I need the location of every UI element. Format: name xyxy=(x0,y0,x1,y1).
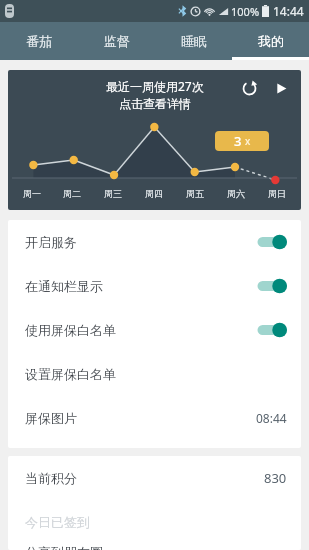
button[interactable]: 最近一周使用27次 xyxy=(8,70,301,210)
staticText: 周三 xyxy=(104,188,122,199)
staticText: 屏保图片 xyxy=(25,410,77,426)
staticText: 番茄 xyxy=(26,33,52,49)
staticText: 使用屏保白名单 xyxy=(25,322,116,338)
staticText: 开启服务 xyxy=(25,234,77,250)
staticText: 今日已签到 xyxy=(25,514,90,530)
button[interactable]: 在通知栏显示 xyxy=(8,264,301,308)
button[interactable]: 设置屏保白名单 xyxy=(8,352,301,396)
button[interactable]: 使用屏保白名单 xyxy=(8,308,301,352)
staticText: 3 xyxy=(234,132,242,150)
button[interactable]: 今日已签到 xyxy=(8,500,301,544)
button[interactable]: 番茄 xyxy=(0,22,78,60)
staticText: 我的 xyxy=(258,33,284,49)
staticText: 监督 xyxy=(104,33,130,49)
button[interactable]: 开启服务 xyxy=(8,220,301,264)
staticText: 在通知栏显示 xyxy=(25,278,103,294)
staticText: 周日 xyxy=(268,188,286,199)
button[interactable]: 分享到朋友圈 xyxy=(8,544,301,550)
button[interactable]: Refresh xyxy=(239,78,259,98)
button[interactable]: 当前积分 xyxy=(8,456,301,500)
button[interactable]: Play xyxy=(271,78,291,98)
button[interactable]: 睡眠 xyxy=(155,22,232,60)
button[interactable]: 我的 xyxy=(232,22,309,60)
staticText: 周一 xyxy=(23,188,41,199)
staticText: 周四 xyxy=(145,188,163,199)
staticText: 830 xyxy=(264,469,287,487)
staticText: 分享到朋友圈 xyxy=(25,544,103,550)
staticText: 08:44 xyxy=(256,410,287,426)
staticText: 周五 xyxy=(186,188,204,199)
button[interactable]: 监督 xyxy=(78,22,155,60)
staticText: 周二 xyxy=(63,188,81,199)
staticText: 当前积分 xyxy=(25,470,77,486)
staticText: 100% xyxy=(231,4,260,19)
staticText: x xyxy=(245,134,251,148)
staticText: 睡眠 xyxy=(181,33,207,49)
staticText: 点击查看详情 xyxy=(119,96,191,111)
button[interactable]: 3 xyxy=(215,131,269,151)
staticText: 设置屏保白名单 xyxy=(25,366,116,382)
staticText: 周六 xyxy=(227,188,245,199)
button[interactable]: 屏保图片 xyxy=(8,396,301,440)
staticText: 14:44 xyxy=(273,3,304,19)
staticText: 最近一周使用27次 xyxy=(106,78,204,94)
